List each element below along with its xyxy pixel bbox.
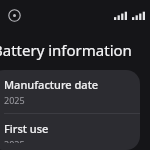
- staticText: Battery information: [0, 40, 132, 60]
- button[interactable]: First use: [0, 114, 140, 150]
- button[interactable]: Manufacture date: [0, 70, 140, 113]
- staticText: 2025: [4, 94, 25, 106]
- other: Signal strength: [114, 11, 127, 20]
- staticText: 2025: [4, 138, 25, 143]
- other: WhatsApp notification: [8, 9, 21, 22]
- staticText: Manufacture date: [4, 77, 99, 92]
- other: Signal strength: [132, 11, 145, 20]
- staticText: First use: [4, 121, 49, 136]
